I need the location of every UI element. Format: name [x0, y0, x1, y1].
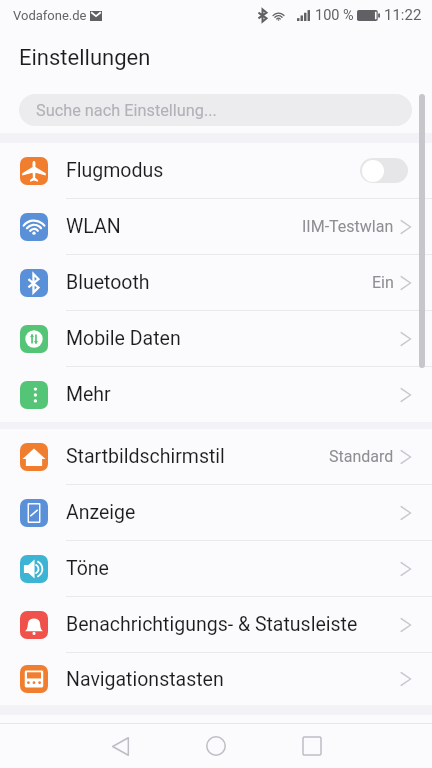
staticText: Suche nach Einstellung... [36, 101, 217, 120]
staticText: Startbildschirmstil [66, 445, 225, 468]
button[interactable]: Töne [0, 541, 432, 596]
staticText: Ein [372, 273, 394, 292]
staticText: 100 % [315, 7, 354, 24]
button[interactable]: Startseite [192, 724, 240, 768]
button[interactable]: Mobile Daten [0, 311, 432, 366]
button[interactable]: Navigationstasten [0, 653, 432, 705]
staticText: Töne [66, 557, 109, 580]
button[interactable]: Bluetooth [0, 255, 432, 310]
button[interactable]: Benachrichtigungs- & Statusleiste [0, 597, 432, 652]
staticText: 11:22 [384, 6, 422, 24]
staticText: IIM-Testwlan [302, 217, 394, 236]
staticText: Mobile Daten [66, 327, 181, 350]
staticText: Einstellungen [19, 45, 151, 71]
staticText: Standard [329, 447, 394, 466]
button[interactable]: Flugmodus [0, 143, 432, 198]
staticText: Bluetooth [66, 271, 150, 294]
button[interactable]: Startbildschirmstil [0, 429, 432, 484]
button[interactable]: Mehr [0, 367, 432, 422]
button[interactable]: Anzeige [0, 485, 432, 540]
button[interactable]: Suche nach Einstellung... [19, 94, 412, 126]
button[interactable]: Flugmodus umschalten [360, 158, 408, 183]
staticText: Navigationstasten [66, 668, 224, 691]
button[interactable]: WLAN [0, 199, 432, 254]
staticText: Vodafone.de [13, 8, 87, 23]
staticText: Flugmodus [66, 159, 164, 182]
staticText: Mehr [66, 383, 111, 406]
staticText: Anzeige [66, 501, 136, 524]
staticText: Benachrichtigungs- & Statusleiste [66, 613, 358, 636]
button[interactable]: Übersicht [288, 724, 336, 768]
button[interactable]: Zurück [96, 724, 144, 768]
staticText: WLAN [66, 215, 121, 238]
